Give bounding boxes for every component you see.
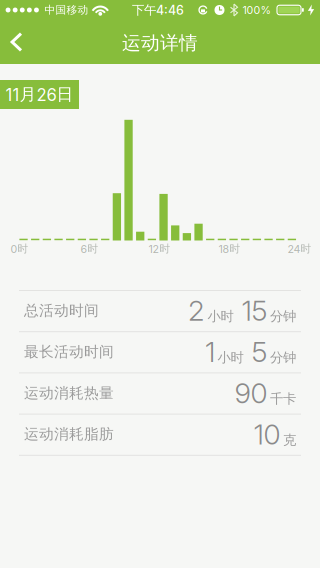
- staticText: 下午4:46: [132, 2, 184, 18]
- staticText: 12时: [148, 242, 170, 255]
- staticText: 运动消耗热量: [24, 384, 114, 402]
- staticText: 千卡: [270, 391, 296, 407]
- staticText: 运动详情: [122, 31, 198, 54]
- staticText: 90: [234, 376, 267, 410]
- staticText: 2: [188, 294, 205, 328]
- staticText: 10: [253, 417, 280, 451]
- staticText: 100%: [242, 3, 270, 16]
- staticText: 最长活动时间: [24, 343, 114, 361]
- staticText: 15: [241, 294, 267, 328]
- staticText: 18时: [218, 242, 240, 255]
- staticText: 运动消耗脂肪: [24, 425, 114, 443]
- staticText: 小时: [217, 349, 243, 366]
- staticText: 分钟: [270, 349, 296, 366]
- staticText: 5: [251, 335, 267, 369]
- staticText: 小时: [207, 308, 233, 325]
- staticText: 6时: [80, 242, 98, 255]
- staticText: 1: [205, 335, 215, 369]
- staticText: 11月26日: [5, 84, 73, 105]
- staticText: 24时: [287, 242, 311, 255]
- button[interactable]: Back: [0, 19, 35, 65]
- staticText: 0时: [10, 242, 28, 255]
- staticText: 克: [283, 432, 296, 448]
- staticText: 分钟: [270, 308, 296, 325]
- staticText: 中国移动: [45, 3, 89, 16]
- staticText: 总活动时间: [24, 302, 99, 320]
